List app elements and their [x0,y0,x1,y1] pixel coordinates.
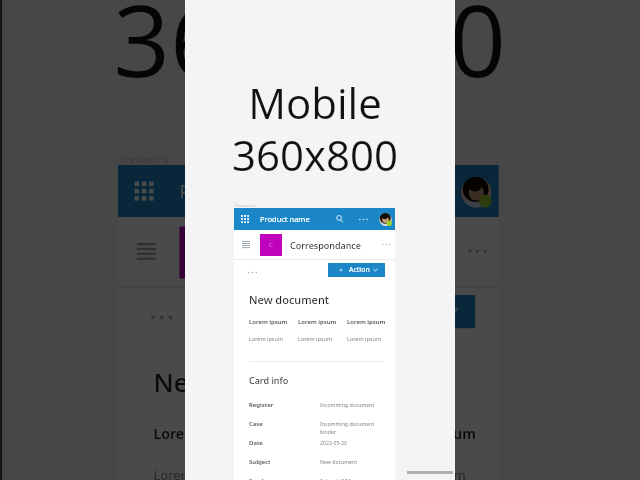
staticText: Incomming document [320,401,375,408]
button[interactable]: More [377,230,395,259]
button[interactable]: Overflow [144,307,177,326]
staticText: Card info [249,374,289,386]
staticText: Lorem ipsum [269,465,352,480]
button[interactable]: Account [451,165,499,217]
staticText: Action [390,300,440,323]
staticText: Lorem ipsum [385,425,477,444]
staticText: Sender [249,477,320,480]
staticText: Previews ⧉ [235,203,256,208]
staticText: Case [249,420,320,428]
staticText: Product name [179,179,298,203]
button[interactable]: Search [350,165,387,217]
staticText: Date [249,439,320,447]
staticText: Lorem ipsum [347,335,382,342]
staticText: Correspondance [290,239,361,251]
staticText: Lorem ipsum [298,318,337,326]
staticText: 2022-05-20 [320,439,348,446]
button[interactable]: Search [332,208,348,230]
button[interactable]: Account [375,208,395,230]
staticText: New document [320,458,358,465]
button[interactable]: Action [340,295,475,328]
staticText: Mobile 360x800 [180,74,450,183]
staticText: Lorem ipsum [298,335,333,342]
staticText: Register [249,401,320,409]
staticText: Lorem ipsum [249,335,284,342]
staticText: C [269,241,273,249]
button[interactable]: Overflow [245,268,259,276]
staticText: Lorem ipsum [153,425,246,444]
staticText: Mobile 360x800 [0,0,629,106]
staticText: Subject [249,458,320,466]
staticText: Lorem ipsum [249,318,288,326]
button[interactable]: Menu [236,230,256,259]
button[interactable]: Menu [123,217,170,286]
staticText: Incomming document binder [320,420,375,436]
staticText: New document [153,364,345,399]
staticText: New document [249,292,330,307]
staticText: Lorem ipsum [347,318,386,326]
staticText: Lorem ipsum [269,425,361,444]
button[interactable]: Action [328,263,385,277]
staticText: Action [349,265,370,275]
staticText: Correspondance [250,238,418,267]
staticText: Lorem ipsum [385,465,468,480]
staticText: Product name [260,214,310,224]
button[interactable]: App launcher [236,208,254,230]
staticText: Sakerah WM [320,477,351,480]
button[interactable]: More options [355,208,371,230]
staticText: Lorem ipsum [153,465,236,480]
button[interactable]: App launcher [123,165,165,217]
staticText: Previews ⧉ [120,153,170,165]
